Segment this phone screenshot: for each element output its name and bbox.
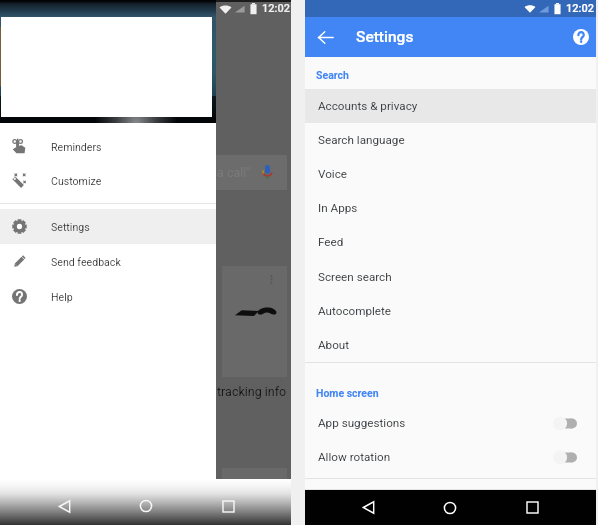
button[interactable]: Customize: [0, 163, 216, 198]
button[interactable]: Home: [105, 488, 187, 524]
staticText: Settings: [51, 221, 90, 233]
button[interactable]: Recents: [491, 490, 573, 525]
button[interactable]: Screen search: [305, 260, 596, 294]
button[interactable]: Send feedback: [0, 244, 216, 279]
button[interactable]: Recents: [187, 488, 269, 524]
button[interactable]: App suggestions: [305, 406, 596, 440]
staticText: Help: [51, 291, 73, 303]
staticText: Autocomplete: [318, 304, 392, 318]
button[interactable]: Feed: [305, 225, 596, 259]
button[interactable]: Autocomplete: [305, 294, 596, 328]
button[interactable]: Accounts & privacy: [305, 89, 596, 123]
staticText: a call": [217, 165, 251, 180]
button[interactable]: Search language: [305, 123, 596, 157]
staticText: About: [318, 338, 350, 352]
staticText: 12:02: [566, 2, 594, 15]
staticText: Reminders: [51, 141, 102, 153]
staticText: tracking info: [217, 384, 287, 399]
staticText: Accounts & privacy: [318, 99, 418, 113]
staticText: Home screen: [316, 387, 379, 399]
button[interactable]: Help: [561, 17, 598, 57]
button[interactable]: Reminders: [0, 129, 216, 164]
staticText: 12:02: [262, 2, 290, 15]
staticText: Settings: [356, 28, 414, 46]
staticText: Search: [316, 69, 349, 81]
button[interactable]: Allow rotation: [305, 440, 596, 474]
staticText: Search language: [318, 133, 405, 147]
button[interactable]: In Apps: [305, 191, 596, 225]
staticText: Send feedback: [51, 256, 121, 268]
button[interactable]: Back: [327, 490, 409, 525]
staticText: Customize: [51, 175, 102, 187]
staticText: App suggestions: [318, 416, 406, 430]
staticText: Screen search: [318, 270, 392, 284]
button[interactable]: Back: [23, 488, 105, 524]
staticText: Voice: [318, 167, 348, 181]
staticText: Feed: [318, 235, 344, 249]
button[interactable]: Back: [305, 17, 345, 57]
button[interactable]: Home: [409, 490, 491, 525]
button[interactable]: Voice: [305, 157, 596, 191]
staticText: Allow rotation: [318, 450, 391, 464]
button[interactable]: Help: [0, 279, 216, 314]
button[interactable]: Settings: [0, 209, 216, 244]
button[interactable]: About: [305, 328, 596, 362]
staticText: In Apps: [318, 201, 358, 215]
